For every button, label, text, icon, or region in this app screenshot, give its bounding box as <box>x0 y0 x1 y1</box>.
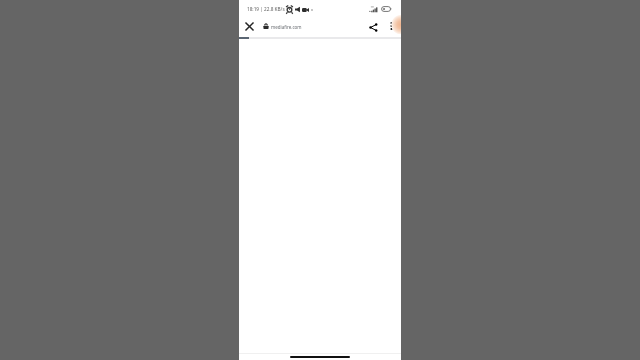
button[interactable]: Close <box>241 18 257 34</box>
staticText: mediafire.com <box>271 24 302 30</box>
button[interactable]: More options <box>383 18 399 34</box>
staticText: 18:19 | 22.8 KB/s <box>247 6 285 12</box>
button[interactable]: mediafire.com <box>261 16 345 37</box>
button[interactable]: Share <box>365 19 381 35</box>
